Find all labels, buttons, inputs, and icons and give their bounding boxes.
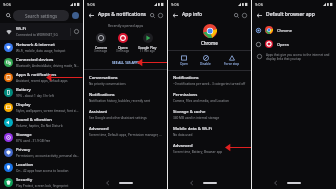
button[interactable]: Camera [93,32,109,54]
button[interactable]: Search settings [13,10,69,21]
button[interactable]: Connected devices [0,55,83,70]
staticText: Assistant, recent apps, default apps [16,79,68,83]
button[interactable]: Advanced [84,123,167,140]
staticText: Apps that give you access to the interne… [266,53,332,61]
staticText: Assistant [89,109,108,115]
staticText: No data used [173,133,193,137]
staticText: Disable [200,62,211,66]
button[interactable]: Assistant [84,106,167,123]
staticText: Permissions [173,92,198,98]
staticText: Location [16,162,34,168]
button[interactable]: Help [240,11,248,19]
staticText: Play Protect, screen lock, fingerprint [16,184,69,188]
staticText: Screen time, Battery, Browser app [173,150,223,154]
button[interactable]: Home [119,182,133,184]
staticText: 340 MB used in internal storage [173,116,220,120]
button[interactable]: Advanced [168,140,251,157]
staticText: Open [180,62,188,66]
staticText: Search settings [25,13,58,19]
staticText: Permissions, account activity, personal … [16,154,79,158]
button[interactable]: Mobile data & Wi-Fi [168,123,251,140]
staticText: App info [182,11,232,18]
staticText: Connected devices [16,57,54,63]
button[interactable]: Display [0,100,83,115]
button[interactable]: Opera [252,37,336,51]
staticText: 11 min ago [140,49,155,53]
staticText: Volume, haptics, Do Not Disturb [16,124,63,128]
staticText: Screen time, Default apps, Permission ma… [89,133,162,137]
staticText: Advanced [173,143,193,149]
button[interactable]: Google Play [137,32,158,54]
staticText: Notification history, bubbles, recently … [89,99,151,103]
staticText: Sound & vibration [16,117,52,123]
button[interactable]: Chrome [252,23,336,37]
button[interactable]: Storage [0,130,83,145]
staticText: Security [16,177,33,183]
staticText: Opera [118,45,128,49]
staticText: Mobile data & Wi-Fi [173,126,212,132]
button[interactable]: Notifications [168,72,251,89]
button[interactable]: Notifications [84,89,167,106]
button[interactable]: Permissions [168,89,251,106]
button[interactable]: Search [148,11,156,19]
button[interactable]: Sound & vibration [0,115,83,130]
staticText: Chrome [201,40,218,46]
staticText: Camera [95,45,108,49]
staticText: Apps & notifications [16,72,57,78]
button[interactable]: Back [103,178,113,188]
staticText: ~0 notifications per week - 3 categories… [173,82,246,86]
button[interactable]: Open [179,54,189,67]
staticText: Display [16,102,31,108]
staticText: 3 min ago [116,49,130,53]
button[interactable]: SEE ALL 145 APPS [110,58,142,66]
staticText: No priority conversations [89,82,126,86]
button[interactable]: Home [287,182,301,184]
staticText: Connected to WORKNET_5G [16,33,58,37]
button[interactable]: Force stop [223,54,241,67]
staticText: On - 42 apps have access to location [16,169,69,173]
staticText: Default browser app [266,11,315,18]
button[interactable]: Account [72,12,79,19]
staticText: Storage & cache [173,109,206,115]
staticText: Camera, Files and media, and Location [173,99,229,103]
staticText: Privacy [16,147,31,153]
button[interactable]: Back [271,178,281,188]
button[interactable]: Back [255,11,263,19]
button[interactable]: Back [171,11,179,19]
staticText: Opera [277,42,289,47]
button[interactable]: Location [0,160,83,175]
staticText: Google Play [138,45,157,49]
staticText: Chrome [277,28,292,33]
button[interactable]: Apps & notifications [0,70,83,85]
staticText: 87% used - 31.9 GB free [16,139,51,143]
staticText: 9:06 [171,2,179,7]
button[interactable]: Back [87,11,95,19]
button[interactable]: Help [156,11,164,19]
staticText: Bluetooth, Android Auto, driving mode, N… [16,64,79,68]
button[interactable]: Conversations [84,72,167,89]
button[interactable]: Storage & cache [168,106,251,123]
button[interactable]: Security [0,175,83,189]
staticText: 99% - about 1 day 3 hr left [16,94,54,98]
staticText: Styles, wallpapers, screen timeout, font… [16,109,79,113]
staticText: See Google and other Assistant settings [89,116,147,120]
button[interactable]: Battery [0,85,83,100]
staticText: Battery [16,87,31,93]
staticText: 9:06 [87,2,95,7]
button[interactable]: Search [232,11,240,19]
button[interactable]: Wi-Fi [4,26,79,37]
staticText: Recently opened apps [108,23,144,28]
button[interactable]: Privacy [0,145,83,160]
staticText: Wi-Fi [16,26,26,32]
staticText: Notifications [173,75,199,81]
button[interactable]: Back [187,178,197,188]
button[interactable]: Home [203,182,217,184]
staticText: Wi-Fi, mobile, data usage, hotspot [16,49,66,53]
button[interactable]: Opera [115,32,131,54]
staticText: Network & internet [16,42,55,48]
staticText: 3 min ago [94,49,108,53]
button[interactable]: Search [4,11,13,20]
button[interactable]: Disable [199,54,212,67]
staticText: Storage [16,132,32,138]
button[interactable]: Network & internet [0,40,83,55]
